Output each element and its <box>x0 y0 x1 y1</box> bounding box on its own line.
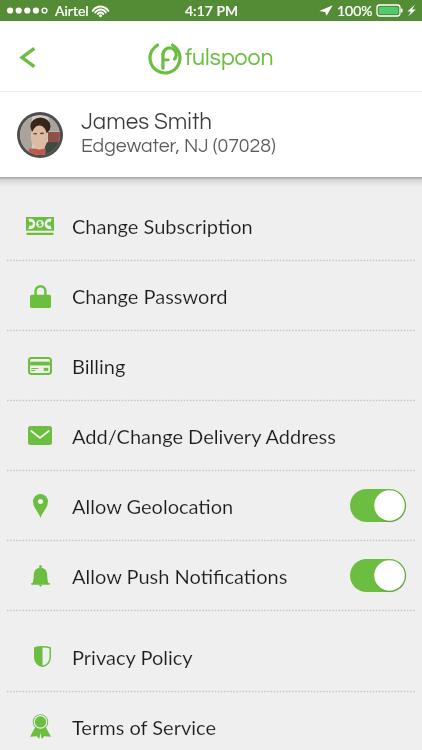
staticText: James Smith <box>81 111 212 134</box>
staticText: 100% <box>337 2 373 19</box>
staticText: Edgewater, NJ (07028) <box>81 136 276 156</box>
staticText: Privacy Policy <box>72 645 193 669</box>
button[interactable]: Allow Geolocation <box>0 471 422 540</box>
staticText: Terms of Service <box>72 715 216 739</box>
staticText: Change Subscription <box>72 214 253 238</box>
button[interactable]: Terms of Service <box>0 692 422 750</box>
button[interactable]: Back <box>6 36 48 78</box>
button[interactable]: Privacy Policy <box>0 622 422 691</box>
button[interactable]: Change Password <box>0 261 422 330</box>
button[interactable]: Billing <box>0 331 422 400</box>
staticText: Airtel <box>55 2 89 19</box>
button[interactable]: Toggle on <box>350 489 406 522</box>
staticText: 4:17 PM <box>185 2 238 19</box>
button[interactable]: James Smith <box>0 92 422 177</box>
staticText: Change Password <box>72 284 228 308</box>
staticText: Add/Change Delivery Address <box>72 424 336 448</box>
button[interactable]: Change Subscription <box>0 191 422 260</box>
staticText: Allow Geolocation <box>72 494 234 518</box>
button[interactable]: Add/Change Delivery Address <box>0 401 422 470</box>
staticText: fulspoon <box>185 46 274 70</box>
staticText: Billing <box>72 354 126 378</box>
button[interactable]: Toggle on <box>350 559 406 592</box>
button[interactable]: Allow Push Notifications <box>0 541 422 610</box>
staticText: Allow Push Notifications <box>72 564 288 588</box>
